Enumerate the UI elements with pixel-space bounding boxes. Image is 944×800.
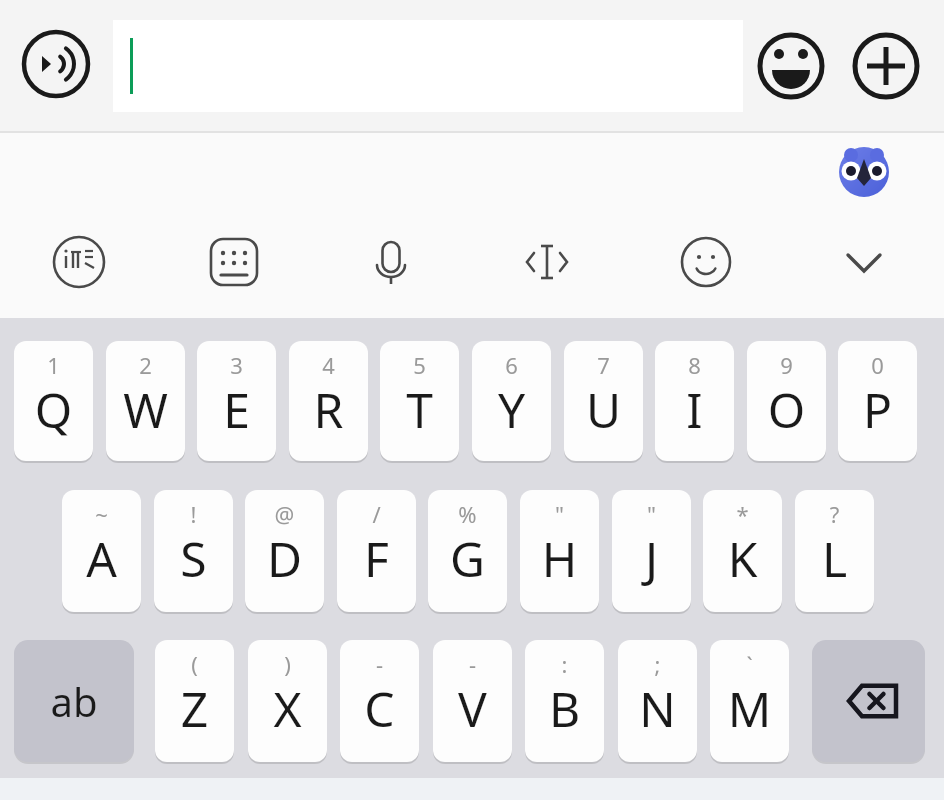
staticText: : (525, 649, 604, 679)
button[interactable]: Backspace (812, 640, 925, 762)
button[interactable]: ? (795, 490, 874, 612)
staticText: - (340, 649, 419, 679)
staticText: ~ (62, 499, 141, 529)
staticText: Y (472, 377, 551, 442)
staticText: ` (710, 649, 789, 679)
staticText: C (340, 676, 419, 741)
staticText: A (62, 526, 141, 591)
staticText: ( (155, 649, 234, 679)
staticText: K (703, 526, 782, 591)
button[interactable]: 7 (564, 341, 643, 461)
staticText: O (747, 377, 826, 442)
staticText: ! (154, 499, 233, 529)
staticText: 2 (106, 350, 185, 380)
staticText: / (337, 499, 416, 529)
button[interactable]: ` (710, 640, 789, 762)
staticText: D (245, 526, 324, 591)
staticText: Q (14, 377, 93, 442)
staticText: @ (245, 499, 324, 529)
staticText: ) (248, 649, 327, 679)
staticText: L (795, 526, 874, 591)
button[interactable]: : (525, 640, 604, 762)
staticText: * (703, 499, 782, 529)
button[interactable]: Add (852, 32, 920, 100)
button[interactable]: 0 (838, 341, 917, 461)
button[interactable]: Sound (21, 29, 91, 99)
staticText: 6 (472, 350, 551, 380)
staticText: 7 (564, 350, 643, 380)
staticText: P (838, 377, 917, 442)
button[interactable]: % (428, 490, 507, 612)
button[interactable]: " (520, 490, 599, 612)
staticText: 0 (838, 350, 917, 380)
button[interactable]: ; (618, 640, 697, 762)
staticText: M (710, 676, 789, 741)
staticText: G (428, 526, 507, 591)
staticText: B (525, 676, 604, 741)
button[interactable]: Emoji (757, 32, 825, 100)
button[interactable]: * (703, 490, 782, 612)
button[interactable]: - (340, 640, 419, 762)
staticText: E (197, 377, 276, 442)
staticText: 5 (380, 350, 459, 380)
staticText: 8 (655, 350, 734, 380)
staticText: H (520, 526, 599, 591)
button[interactable]: Stickers (677, 233, 735, 291)
button[interactable]: Handwriting (50, 233, 108, 291)
staticText: X (248, 676, 327, 741)
staticText: Z (155, 676, 234, 741)
button[interactable]: ! (154, 490, 233, 612)
button[interactable]: ~ (62, 490, 141, 612)
button[interactable]: ab (14, 640, 134, 762)
staticText: 1 (14, 350, 93, 380)
button[interactable]: Collapse (835, 233, 893, 291)
button[interactable]: @ (245, 490, 324, 612)
button[interactable]: 9 (747, 341, 826, 461)
staticText: R (289, 377, 368, 442)
button[interactable]: 2 (106, 341, 185, 461)
staticText: J (612, 526, 691, 591)
button[interactable]: 6 (472, 341, 551, 461)
button[interactable]: ) (248, 640, 327, 762)
button[interactable]: 3 (197, 341, 276, 461)
button[interactable]: - (433, 640, 512, 762)
button[interactable]: 5 (380, 341, 459, 461)
staticText: T (380, 377, 459, 442)
button[interactable]: Keyboard (205, 233, 263, 291)
staticText: U (564, 377, 643, 442)
staticText: W (106, 377, 185, 442)
staticText: 3 (197, 350, 276, 380)
button[interactable]: 8 (655, 341, 734, 461)
button[interactable]: 1 (14, 341, 93, 461)
button[interactable]: 4 (289, 341, 368, 461)
staticText: N (618, 676, 697, 741)
button[interactable]: Assistant (838, 278, 890, 330)
button[interactable]: Voice input (362, 233, 420, 291)
staticText: S (154, 526, 233, 591)
button[interactable]: ( (155, 640, 234, 762)
staticText: ? (795, 499, 874, 529)
staticText: 9 (747, 350, 826, 380)
staticText: ; (618, 649, 697, 679)
staticText: I (655, 377, 734, 442)
staticText: 4 (289, 350, 368, 380)
staticText: " (520, 499, 599, 529)
button[interactable]: / (337, 490, 416, 612)
staticText: ab (50, 674, 98, 728)
button[interactable]: " (612, 490, 691, 612)
staticText: F (337, 526, 416, 591)
button[interactable]: Text cursor (518, 233, 576, 291)
button[interactable] (113, 20, 743, 112)
staticText: " (612, 499, 691, 529)
staticText: - (433, 649, 512, 679)
staticText: V (433, 676, 512, 741)
staticText: % (428, 499, 507, 529)
